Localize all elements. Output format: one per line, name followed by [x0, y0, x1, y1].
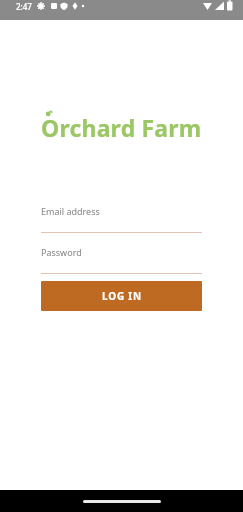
button[interactable]: Password [41, 246, 202, 274]
staticText: Password [41, 246, 82, 258]
staticText: Orchard Farm [41, 112, 202, 143]
staticText: LOG IN [102, 289, 142, 303]
button[interactable]: LOG IN [41, 281, 202, 311]
other: Home gesture [83, 500, 161, 503]
button[interactable]: Email address [41, 205, 202, 233]
staticText: 2:47 [16, 1, 32, 12]
staticText: Email address [41, 205, 100, 217]
